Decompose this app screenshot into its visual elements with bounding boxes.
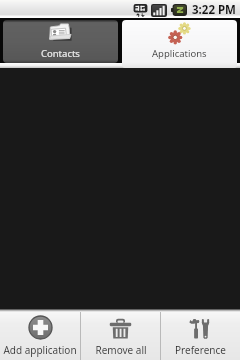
staticText: Contacts <box>41 47 80 60</box>
staticText: Applications <box>152 47 207 60</box>
staticText: Preference <box>175 343 226 357</box>
button[interactable]: Contacts <box>3 20 118 63</box>
staticText: Remove all <box>95 343 147 357</box>
button[interactable]: Preference <box>161 312 240 360</box>
button[interactable]: Add application <box>0 312 80 360</box>
staticText: 3:22 PM <box>192 2 236 18</box>
button[interactable]: Applications <box>122 20 237 68</box>
button[interactable]: Remove all <box>81 312 160 360</box>
staticText: Add application <box>3 343 77 357</box>
